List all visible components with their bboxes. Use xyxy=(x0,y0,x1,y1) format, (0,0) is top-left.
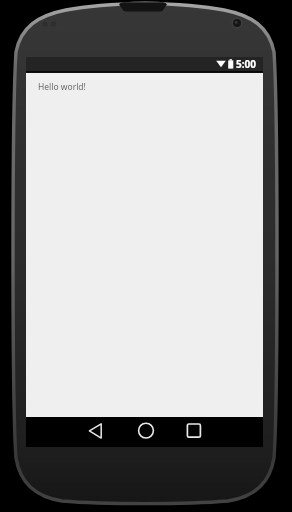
button[interactable] xyxy=(136,422,156,442)
button[interactable] xyxy=(184,422,204,442)
staticText: Hello world! xyxy=(38,81,86,93)
button[interactable] xyxy=(85,422,106,442)
staticText: 5:00 xyxy=(236,57,256,71)
